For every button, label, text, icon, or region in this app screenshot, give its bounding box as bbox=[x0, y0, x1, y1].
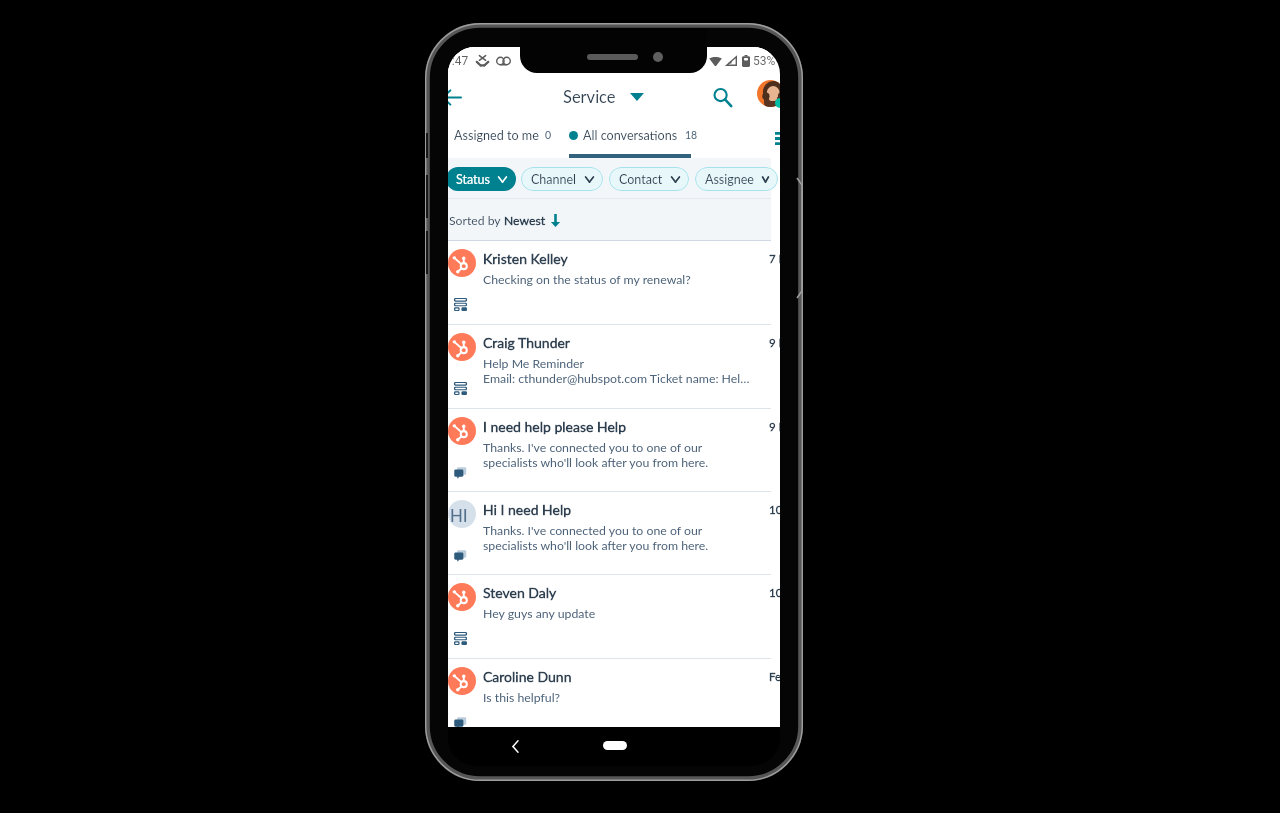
staticText: Status bbox=[456, 172, 490, 187]
staticText: Service bbox=[563, 87, 616, 107]
staticText: 7 F bbox=[769, 252, 780, 266]
button[interactable]: Steven Daly bbox=[448, 575, 771, 658]
button[interactable]: Channel bbox=[521, 167, 603, 191]
staticText: Thanks. I've connected you to one of our bbox=[483, 523, 703, 538]
staticText: 53% bbox=[753, 54, 776, 68]
button[interactable]: I need help please Help bbox=[448, 409, 771, 491]
staticText: I need help please Help bbox=[483, 418, 627, 435]
staticText: specialists who'll look after you from h… bbox=[483, 538, 709, 553]
staticText: All conversations bbox=[583, 128, 678, 143]
staticText: Is this helpful? bbox=[483, 690, 561, 705]
staticText: specialists who'll look after you from h… bbox=[483, 455, 709, 470]
button[interactable]: All conversations bbox=[569, 128, 698, 143]
staticText: Hi I need Help bbox=[483, 501, 572, 518]
staticText: Thanks. I've connected you to one of our bbox=[483, 440, 703, 455]
staticText: 9:47 bbox=[448, 54, 469, 68]
staticText: 9 F bbox=[769, 420, 780, 434]
staticText: Channel bbox=[531, 172, 577, 187]
staticText: Checking on the status of my renewal? bbox=[483, 272, 691, 287]
staticText: Hey guys any update bbox=[483, 606, 596, 621]
staticText: Caroline Dunn bbox=[483, 668, 572, 685]
staticText: Sorted by bbox=[449, 213, 504, 228]
staticText: Help Me Reminder bbox=[483, 356, 585, 371]
staticText: 9 F bbox=[769, 336, 780, 350]
staticText: 10 F bbox=[769, 503, 780, 517]
button[interactable]: HI bbox=[448, 492, 771, 574]
button[interactable]: Craig Thunder bbox=[448, 325, 771, 408]
button[interactable]: Service bbox=[563, 87, 644, 107]
staticText: Assignee bbox=[705, 172, 754, 187]
staticText: Steven Daly bbox=[483, 584, 557, 601]
button[interactable]: Home bbox=[603, 741, 627, 750]
button[interactable]: Your profile bbox=[757, 80, 780, 107]
staticText: Feb 2 bbox=[769, 670, 780, 684]
staticText: Assigned to me bbox=[454, 128, 539, 143]
staticText: 0 bbox=[545, 129, 552, 142]
button[interactable]: Back bbox=[448, 84, 467, 110]
button[interactable]: Views bbox=[767, 123, 780, 153]
staticText: Contact bbox=[619, 172, 663, 187]
button[interactable]: Back bbox=[503, 734, 527, 758]
staticText: 10 F bbox=[769, 586, 780, 600]
button[interactable]: Search bbox=[708, 83, 736, 111]
button[interactable]: Contact bbox=[609, 167, 689, 191]
staticText: Email: cthunder@hubspot.com Ticket name:… bbox=[483, 371, 755, 386]
staticText: 18 bbox=[685, 129, 698, 142]
staticText: HI bbox=[450, 505, 468, 526]
staticText: Craig Thunder bbox=[483, 334, 570, 351]
staticText: Kristen Kelley bbox=[483, 250, 568, 267]
button[interactable]: Status bbox=[448, 167, 516, 191]
button[interactable]: Caroline Dunn bbox=[448, 659, 771, 727]
button[interactable]: Kristen Kelley bbox=[448, 241, 771, 324]
button[interactable]: Assignee bbox=[695, 167, 778, 191]
staticText: Newest bbox=[504, 213, 546, 228]
button[interactable]: Assigned to me bbox=[454, 128, 552, 143]
